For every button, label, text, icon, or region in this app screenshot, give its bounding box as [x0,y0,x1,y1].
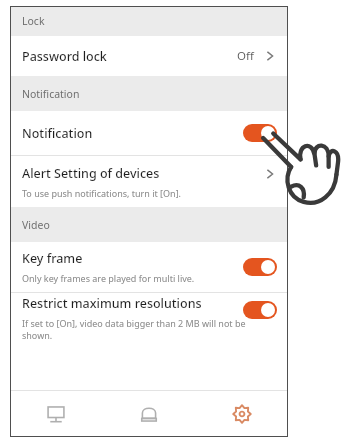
staticText: To use push notifications, turn it [On]. [22,187,182,199]
button[interactable]: Monitor [10,391,102,437]
button[interactable]: Toggle, on [243,124,277,142]
staticText: Notification [22,87,80,101]
button[interactable]: Restrict maximum resolutions [10,293,288,343]
staticText: Restrict maximum resolutions [22,295,202,312]
staticText: Alert Setting of devices [22,165,160,182]
staticText: Only key frames are played for multi liv… [22,272,195,284]
staticText: Video [22,218,50,232]
staticText: Key frame [22,250,83,267]
staticText: If set to [On], video data bigger than 2… [22,317,278,341]
button[interactable]: Password lock [10,36,288,76]
staticText: Off [237,48,254,64]
button[interactable]: Alerts [102,391,195,437]
button[interactable]: Toggle, on [243,301,277,319]
button[interactable]: Settings [195,391,288,437]
staticText: Notification [22,125,93,142]
button[interactable]: Notification [10,111,288,155]
staticText: Lock [22,14,45,28]
button[interactable]: Toggle, on [243,258,277,276]
button[interactable]: Alert Setting of devices [10,156,288,207]
staticText: Password lock [22,48,107,65]
button[interactable]: Key frame [10,242,288,292]
